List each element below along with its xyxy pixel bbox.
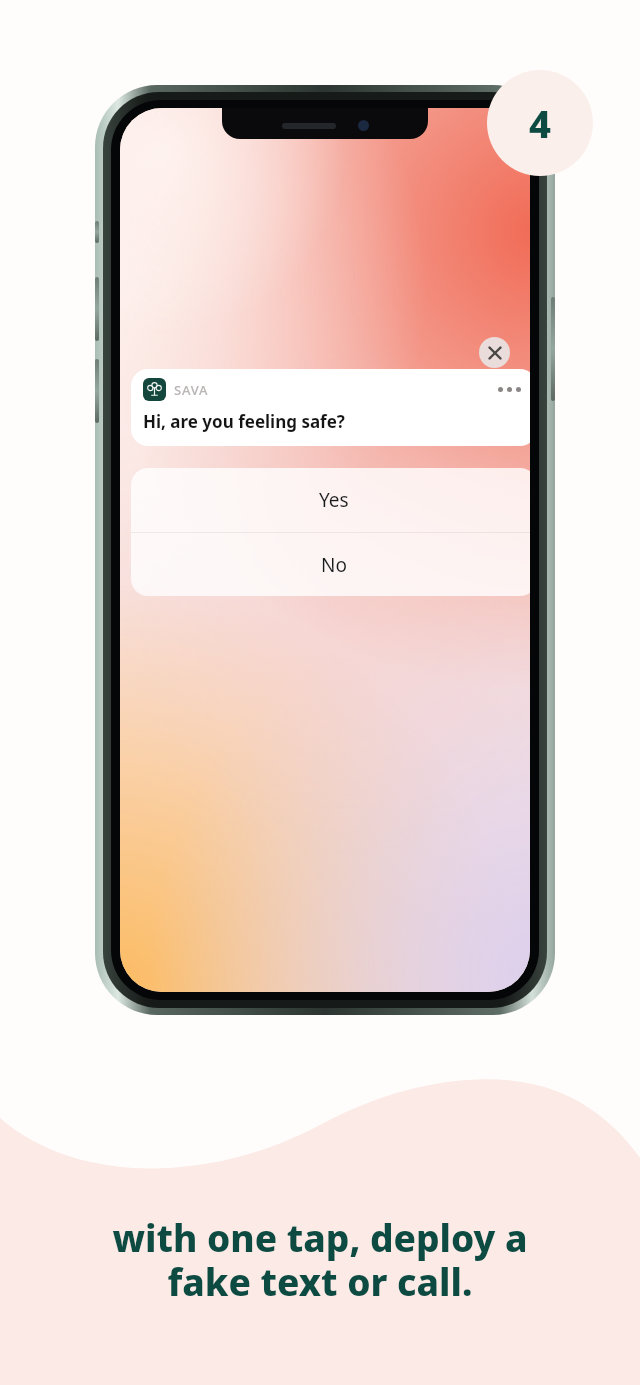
button[interactable]: Yes [131,468,530,532]
button[interactable]: SAVA [131,369,530,446]
button[interactable]: No [131,533,530,596]
button[interactable]: Dismiss notification [479,337,510,368]
button[interactable]: More options [498,387,521,392]
staticText: 4 [529,97,551,149]
staticText: No [321,552,347,578]
staticText: Hi, are you feeling safe? [143,410,345,433]
staticText: with one tap, deploy a fake text or call… [112,1212,528,1307]
staticText: Yes [319,487,349,513]
staticText: SAVA [174,381,209,399]
